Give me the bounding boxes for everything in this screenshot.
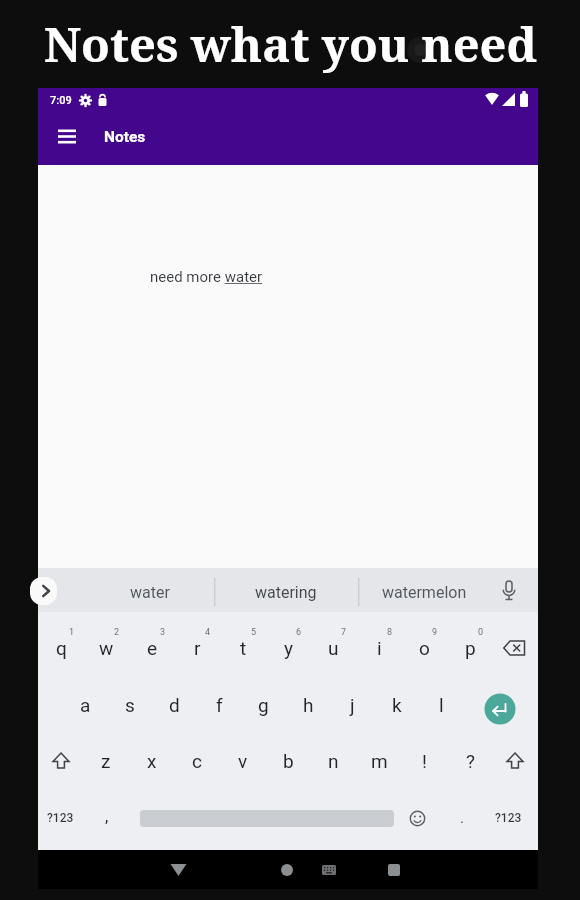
button[interactable]: n — [311, 739, 355, 783]
staticText: Notes — [104, 128, 146, 146]
button[interactable]: u — [311, 626, 355, 670]
button[interactable]: b — [266, 739, 310, 783]
button[interactable]: ?123 — [35, 803, 85, 833]
staticText: r — [194, 637, 201, 659]
button[interactable]: ? — [448, 739, 492, 783]
staticText: 8 — [387, 627, 393, 638]
button[interactable]: w — [84, 626, 128, 670]
button[interactable]: i — [357, 626, 401, 670]
button[interactable] — [501, 580, 517, 604]
staticText: 4 — [205, 627, 211, 638]
staticText: x — [147, 750, 157, 772]
staticText: w — [99, 637, 114, 659]
staticText: need more water — [150, 268, 263, 286]
staticText: 2 — [114, 627, 120, 638]
staticText: 0 — [478, 627, 484, 638]
button[interactable]: g — [241, 683, 285, 727]
button[interactable] — [41, 584, 52, 598]
button[interactable] — [388, 864, 400, 876]
button[interactable]: water — [80, 572, 220, 612]
staticText: d — [169, 694, 180, 716]
button[interactable] — [506, 752, 524, 770]
staticText: b — [283, 750, 294, 772]
button[interactable]: v — [221, 739, 265, 783]
button[interactable]: j — [330, 683, 374, 727]
staticText: e — [147, 637, 158, 659]
button[interactable]: s — [108, 683, 152, 727]
staticText: ?123 — [47, 811, 74, 825]
staticText: u — [328, 637, 339, 659]
staticText: t — [240, 637, 247, 659]
button[interactable]: o — [402, 626, 446, 670]
staticText: ! — [422, 750, 427, 772]
button[interactable]: p — [448, 626, 492, 670]
button[interactable]: ! — [402, 739, 446, 783]
button[interactable] — [52, 752, 70, 770]
staticText: z — [101, 750, 111, 772]
staticText: m — [371, 750, 388, 772]
button[interactable]: q — [39, 626, 83, 670]
staticText: . — [460, 809, 464, 827]
button[interactable]: f — [197, 683, 241, 727]
staticText: p — [465, 637, 476, 659]
button[interactable]: h — [286, 683, 330, 727]
button[interactable]: watering — [216, 572, 356, 612]
button[interactable]: r — [175, 626, 219, 670]
staticText: a — [80, 694, 91, 716]
staticText: f — [216, 694, 223, 716]
button[interactable]: t — [221, 626, 265, 670]
staticText: Notes what you need — [44, 12, 537, 76]
button[interactable] — [409, 810, 426, 827]
button[interactable] — [484, 693, 516, 725]
staticText: ?123 — [495, 811, 522, 825]
button[interactable]: , — [92, 801, 122, 831]
staticText: watermelon — [382, 583, 467, 602]
button[interactable] — [58, 129, 76, 144]
button[interactable]: . — [449, 803, 475, 833]
button[interactable]: c — [175, 739, 219, 783]
button[interactable]: d — [152, 683, 196, 727]
button[interactable]: x — [130, 739, 174, 783]
button[interactable]: m — [357, 739, 401, 783]
button[interactable]: e — [130, 626, 174, 670]
staticText: k — [392, 694, 402, 716]
staticText: 7 — [341, 627, 347, 638]
staticText: 3 — [160, 627, 166, 638]
button[interactable]: k — [375, 683, 419, 727]
button[interactable] — [503, 639, 527, 657]
staticText: o — [419, 637, 430, 659]
button[interactable]: watermelon — [354, 572, 494, 612]
staticText: j — [350, 694, 355, 716]
button[interactable] — [322, 865, 336, 875]
staticText: ? — [466, 750, 475, 772]
staticText: 1 — [69, 627, 75, 638]
staticText: water — [130, 583, 170, 602]
staticText: 7:09 — [50, 94, 72, 107]
button[interactable]: l — [419, 683, 463, 727]
staticText: c — [192, 750, 202, 772]
button[interactable] — [170, 863, 187, 877]
staticText: , — [105, 806, 109, 826]
staticText: s — [125, 694, 135, 716]
staticText: 6 — [296, 627, 302, 638]
staticText: 9 — [432, 627, 438, 638]
button[interactable] — [281, 864, 293, 876]
button[interactable]: a — [63, 683, 107, 727]
staticText: 5 — [251, 627, 257, 638]
staticText: i — [377, 637, 382, 659]
staticText: n — [328, 750, 339, 772]
button[interactable]: ?123 — [483, 803, 533, 833]
staticText: q — [56, 637, 67, 659]
staticText: watering — [255, 583, 317, 602]
staticText: h — [303, 694, 314, 716]
staticText: v — [238, 750, 248, 772]
button[interactable]: z — [84, 739, 128, 783]
staticText: g — [258, 694, 269, 716]
staticText: y — [284, 637, 293, 659]
staticText: l — [439, 694, 444, 716]
button[interactable]: y — [266, 626, 310, 670]
